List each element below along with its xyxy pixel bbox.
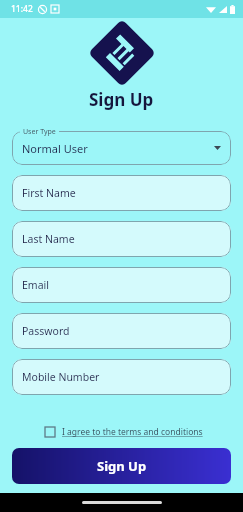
button[interactable]: Email xyxy=(12,267,231,303)
staticText: Email xyxy=(22,278,49,292)
staticText: Sign Up xyxy=(89,88,154,111)
staticText: Password xyxy=(22,324,70,338)
staticText: Sign Up xyxy=(97,457,147,475)
staticText: First Name xyxy=(22,186,76,200)
button[interactable]: Normal User xyxy=(12,131,231,165)
staticText: I agree to the terms and conditions xyxy=(62,426,203,438)
button[interactable]: Password xyxy=(12,313,231,349)
staticText: 11:42 xyxy=(11,3,33,15)
button[interactable]: I agree to the terms and conditions xyxy=(45,426,203,438)
button[interactable]: First Name xyxy=(12,175,231,211)
button[interactable]: Sign Up xyxy=(12,448,231,484)
button[interactable]: Mobile Number xyxy=(12,359,231,395)
staticText: Mobile Number xyxy=(22,370,100,384)
staticText: Last Name xyxy=(22,232,75,246)
button[interactable]: Last Name xyxy=(12,221,231,257)
other: App logo xyxy=(92,23,152,83)
staticText: User Type xyxy=(23,127,56,137)
staticText: Normal User xyxy=(22,141,88,156)
